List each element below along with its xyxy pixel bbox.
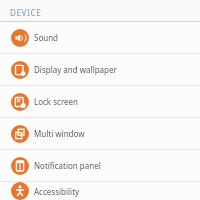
button[interactable]: Display and wallpaper — [0, 54, 200, 85]
button[interactable]: Notification panel — [0, 150, 200, 181]
staticText: DEVICE — [10, 7, 42, 18]
staticText: Sound — [34, 32, 59, 43]
button[interactable]: Accessibility — [0, 182, 200, 200]
button[interactable]: Lock screen — [0, 86, 200, 117]
staticText: Multi window — [34, 128, 85, 139]
staticText: Display and wallpaper — [34, 64, 117, 75]
button[interactable]: Sound — [0, 22, 200, 53]
staticText: Notification panel — [34, 160, 101, 171]
staticText: Lock screen — [34, 96, 79, 107]
button[interactable]: Multi window — [0, 118, 200, 149]
staticText: Accessibility — [34, 186, 80, 197]
